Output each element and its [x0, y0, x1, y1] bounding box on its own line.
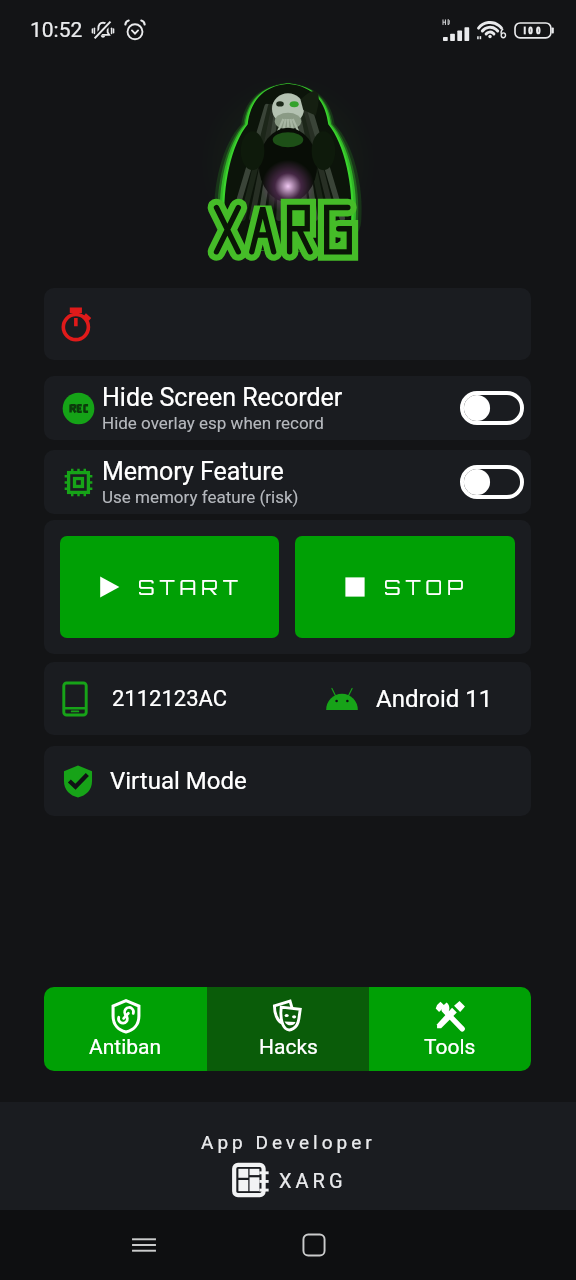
staticText: 2112123AC [112, 686, 228, 712]
button[interactable]: Hacks [207, 987, 369, 1071]
staticText: Tools [424, 1035, 476, 1060]
staticText: Use memory feature (risk) [102, 487, 299, 507]
button[interactable]: Home [288, 1219, 340, 1271]
staticText: 10:52 [30, 18, 83, 43]
staticText: Hide overlay esp when record [102, 413, 324, 433]
button[interactable]: Tools [369, 987, 531, 1071]
staticText: Hide Screen Recorder [102, 383, 343, 412]
other: Timer [58, 305, 96, 343]
staticText: Antiban [89, 1035, 162, 1060]
staticText: START [138, 575, 244, 600]
staticText: Memory Feature [102, 457, 284, 486]
button[interactable]: Toggle [460, 391, 524, 425]
button[interactable]: Hide Screen Recorder [44, 376, 531, 440]
staticText: Hacks [259, 1035, 318, 1060]
button[interactable]: Memory Feature [44, 450, 531, 514]
button[interactable]: Toggle [460, 465, 524, 499]
button[interactable]: STOP [295, 536, 515, 638]
staticText: XARG [279, 1169, 347, 1192]
staticText: App Developer [201, 1131, 376, 1153]
staticText: STOP [384, 575, 468, 600]
button[interactable]: START [60, 536, 279, 638]
button[interactable]: Recent apps [118, 1219, 170, 1271]
staticText: Android 11 [376, 685, 493, 713]
button[interactable]: Virtual Mode [44, 746, 531, 816]
staticText: Virtual Mode [110, 767, 247, 795]
button[interactable]: Antiban [44, 987, 207, 1071]
